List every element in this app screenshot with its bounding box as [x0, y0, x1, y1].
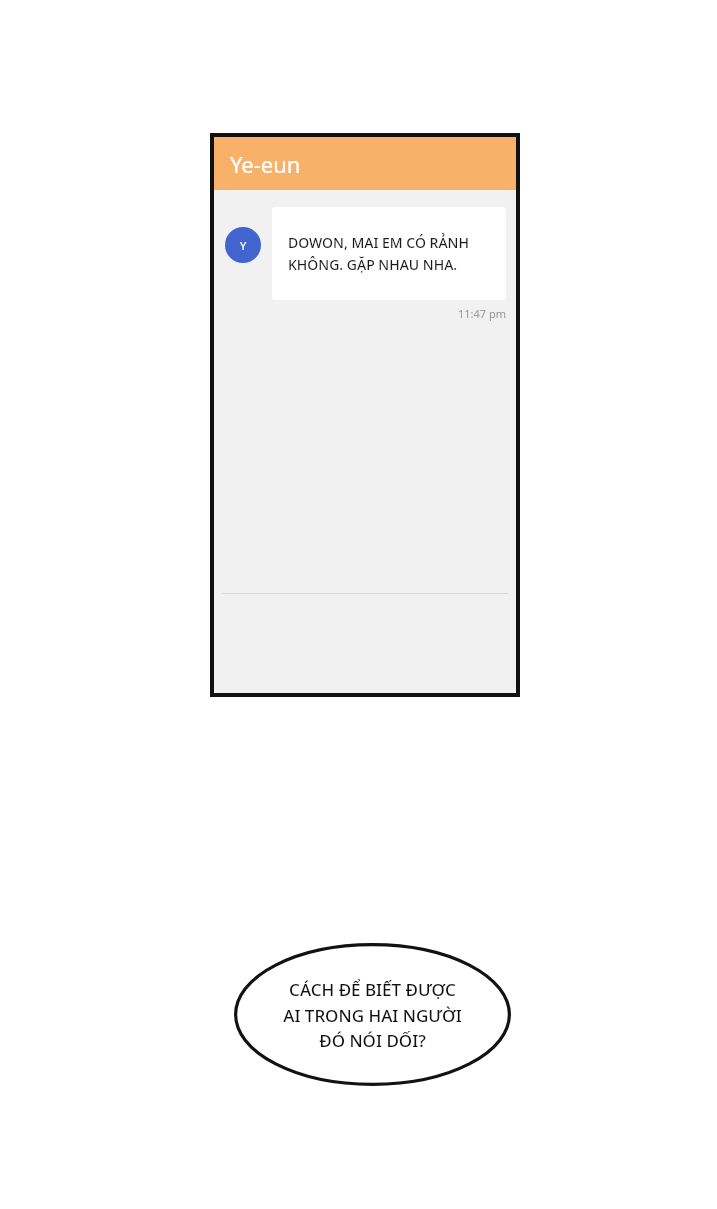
staticText: 11:47 pm [272, 306, 506, 321]
button[interactable]: Y [225, 207, 506, 321]
button[interactable]: Ye-eun [214, 137, 516, 190]
staticText: DOWON, MAI EM CÓ RẢNH KHÔNG. GẶP NHAU NH… [288, 233, 469, 274]
button[interactable]: Narration bubble [234, 943, 511, 1086]
staticText: Ye-eun [230, 149, 301, 179]
staticText: CÁCH ĐỂ BIẾT ĐƯỢC AI TRONG HAI NGƯỜI ĐÓ … [248, 978, 497, 1052]
staticText: Y [240, 238, 247, 253]
